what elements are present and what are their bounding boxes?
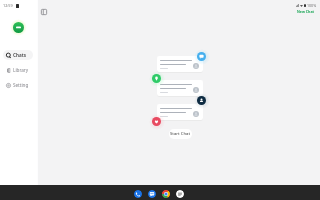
button[interactable]: Chrome	[162, 190, 170, 198]
button[interactable]: Start Chat	[169, 129, 192, 139]
staticText: Setting	[13, 82, 29, 88]
staticText: Start Chat	[170, 131, 191, 137]
button[interactable]: Messages	[148, 190, 156, 198]
button[interactable]: Apps	[176, 190, 184, 198]
button[interactable]: Setting	[3, 80, 33, 90]
button[interactable]: Phone	[134, 190, 142, 198]
staticText: 100%	[307, 3, 317, 8]
button[interactable]: Chats	[3, 50, 33, 60]
button[interactable]: Toggle sidebar	[38, 6, 50, 18]
staticText: Chats	[13, 52, 26, 58]
staticText: Library	[13, 67, 29, 73]
button[interactable]: Library	[3, 65, 33, 75]
staticText: New Chat	[297, 9, 314, 14]
button[interactable]: New Chat	[296, 8, 315, 15]
staticText: 12:59	[3, 3, 13, 8]
